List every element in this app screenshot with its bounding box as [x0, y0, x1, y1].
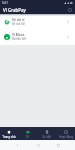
button[interactable]: Trang chủ — [0, 128, 18, 139]
button[interactable]: Số dư ví — [0, 14, 75, 29]
button[interactable]: Back — [14, 142, 20, 148]
staticText: Số dư ví — [12, 17, 25, 21]
button[interactable]: Ưu đãi — [37, 128, 56, 139]
staticText: Số dư: 0đ — [12, 22, 25, 26]
button[interactable]: Ví Moca — [0, 29, 75, 44]
staticText: Ưu đãi — [42, 135, 51, 139]
button[interactable]: Hoạt động — [56, 128, 75, 139]
staticText: Đã liên kết — [12, 37, 26, 41]
button[interactable]: Recent apps — [55, 142, 61, 148]
staticText: Ví — [26, 135, 29, 139]
button[interactable]: Home — [35, 142, 41, 148]
staticText: Trang chủ — [2, 135, 16, 139]
staticText: Ví GrabPay — [3, 7, 26, 13]
button[interactable]: Ví — [18, 128, 37, 139]
staticText: Hoạt động — [59, 135, 73, 139]
staticText: Ví Moca — [12, 32, 25, 36]
staticText: 9:41 — [2, 1, 8, 5]
button[interactable]: Help — [66, 6, 73, 13]
